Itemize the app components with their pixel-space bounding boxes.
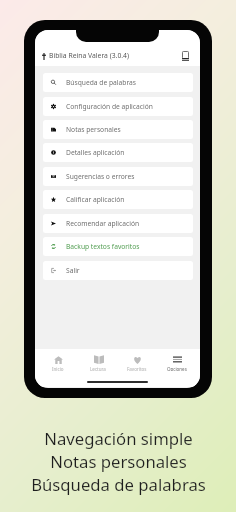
staticText: Inicio — [52, 366, 64, 371]
staticText: Opciones — [167, 366, 187, 371]
button[interactable]: Salir — [43, 261, 193, 280]
button[interactable]: Sugerencias o errores — [43, 167, 193, 186]
staticText: Favoritos — [127, 366, 147, 371]
button[interactable]: Abrir Biblia — [176, 46, 195, 65]
button[interactable]: Opciones — [160, 355, 194, 371]
staticText: Calificar aplicación — [66, 195, 125, 204]
button[interactable]: Lectura — [81, 355, 115, 371]
button[interactable]: Backup textos favoritos — [43, 237, 193, 256]
staticText: Recomendar aplicación — [66, 219, 140, 228]
staticText: Salir — [66, 266, 80, 275]
staticText: Detalles aplicación — [66, 148, 125, 157]
staticText: Backup textos favoritos — [66, 242, 140, 251]
button[interactable]: Búsqueda de palabras — [43, 73, 193, 92]
button[interactable]: Recomendar aplicación — [43, 214, 193, 233]
staticText: Configuración de aplicación — [66, 102, 153, 111]
staticText: Búsqueda de palabras — [31, 473, 206, 496]
staticText: Búsqueda de palabras — [66, 78, 136, 87]
button[interactable]: Notas personales — [43, 120, 193, 139]
staticText: Notas personales — [66, 125, 121, 134]
button[interactable]: Calificar aplicación — [43, 190, 193, 209]
button[interactable]: Favoritos — [120, 355, 154, 371]
staticText: Lectura — [90, 366, 106, 371]
staticText: Navegación simple — [44, 427, 193, 450]
button[interactable]: Inicio — [41, 355, 75, 371]
staticText: Biblia Reina Valera (3.0.4) — [49, 51, 130, 60]
button[interactable]: Detalles aplicación — [43, 143, 193, 162]
button[interactable]: Configuración de aplicación — [43, 97, 193, 116]
staticText: Notas personales — [50, 450, 187, 473]
staticText: Sugerencias o errores — [66, 172, 135, 181]
